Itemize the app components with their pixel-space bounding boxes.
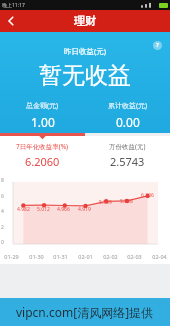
staticText: 5.012 [37, 206, 50, 213]
staticText: 01-29 [4, 253, 19, 260]
staticText: ? [156, 41, 159, 49]
staticText: 5.509 [99, 199, 112, 206]
staticText: 0.00 [116, 114, 140, 130]
staticText: 总金额(元) [26, 101, 59, 111]
staticText: 01-30 [29, 253, 44, 260]
staticText: 01-31 [53, 253, 68, 260]
staticText: 02-02 [103, 253, 118, 260]
staticText: 5.558 [120, 198, 133, 205]
staticText: 7日年化收益率(%) [16, 142, 69, 151]
button[interactable]: 万份收益(元) [85, 142, 170, 169]
staticText: 6.2060 [25, 154, 60, 169]
staticText: 2 [1, 224, 4, 231]
staticText: 万份收益(元) [109, 142, 146, 151]
staticText: 4.982 [17, 206, 30, 213]
button[interactable]: Back [0, 10, 22, 32]
staticText: 4.966 [57, 206, 70, 213]
staticText: 6.206 [141, 192, 154, 199]
staticText: 累计收益(元) [108, 101, 148, 111]
button[interactable]: 转出 [6, 300, 82, 320]
staticText: 02-03 [127, 253, 142, 260]
staticText: 4.919 [78, 206, 91, 213]
staticText: vipcn.com[清风网络]提供 [16, 304, 154, 320]
staticText: 理财 [74, 14, 96, 28]
button[interactable]: 7日年化收益率(%) [0, 142, 85, 169]
staticText: 0 [1, 239, 4, 246]
staticText: 转出 [35, 305, 53, 316]
staticText: 昨日收益(元) [64, 46, 106, 56]
staticText: 2.5743 [110, 154, 145, 169]
staticText: 1.00 [31, 114, 55, 130]
staticText: 4 [1, 208, 4, 215]
staticText: 晚上11:17 [2, 2, 25, 9]
staticText: 转入 [117, 305, 135, 316]
button[interactable]: 转入 [88, 300, 164, 320]
staticText: 02-01 [78, 253, 93, 260]
staticText: 02-04 [152, 253, 167, 260]
button[interactable]: Help [150, 38, 164, 52]
staticText: 6 [1, 193, 4, 200]
staticText: 8 [1, 177, 4, 184]
staticText: 暂无收益 [39, 61, 131, 90]
